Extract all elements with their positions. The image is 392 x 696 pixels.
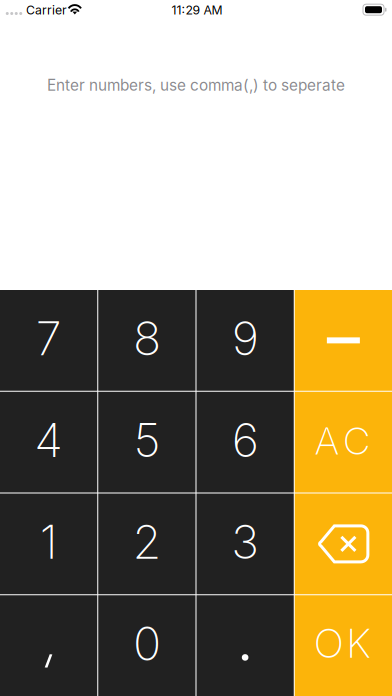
button[interactable]: 2 bbox=[98, 493, 195, 594]
button[interactable]: 0 bbox=[98, 595, 195, 696]
button[interactable]: 9 bbox=[196, 290, 294, 391]
staticText: 1 bbox=[40, 514, 58, 570]
staticText: AC bbox=[315, 418, 369, 464]
staticText: Carrier bbox=[26, 3, 67, 17]
staticText: 7 bbox=[36, 310, 62, 367]
staticText: 9 bbox=[232, 310, 259, 367]
staticText: 6 bbox=[232, 412, 259, 468]
button[interactable]: 4 bbox=[0, 392, 97, 493]
staticText: 8 bbox=[133, 310, 161, 367]
button[interactable]: 5 bbox=[98, 392, 195, 493]
staticText: OK bbox=[315, 619, 370, 667]
staticText: 5 bbox=[133, 412, 160, 468]
staticText: 3 bbox=[231, 514, 259, 570]
staticText: 2 bbox=[132, 514, 161, 570]
button[interactable]: 7 bbox=[0, 290, 97, 391]
button[interactable]: Decimal point bbox=[196, 595, 294, 696]
staticText: Enter numbers, use comma(,) to seperate bbox=[47, 76, 345, 95]
staticText: 11:29 AM bbox=[171, 3, 222, 17]
staticText: 4 bbox=[34, 412, 63, 468]
button[interactable]: 6 bbox=[196, 392, 294, 493]
button[interactable]: Delete bbox=[295, 493, 392, 594]
button[interactable]: 3 bbox=[196, 493, 294, 594]
button[interactable]: Minus bbox=[295, 290, 392, 391]
button[interactable]: AC bbox=[295, 392, 392, 493]
button[interactable]: Comma bbox=[0, 595, 97, 696]
button[interactable]: 1 bbox=[0, 493, 97, 594]
staticText: 0 bbox=[133, 615, 161, 672]
button[interactable]: OK bbox=[295, 595, 392, 696]
button[interactable]: 8 bbox=[98, 290, 195, 391]
